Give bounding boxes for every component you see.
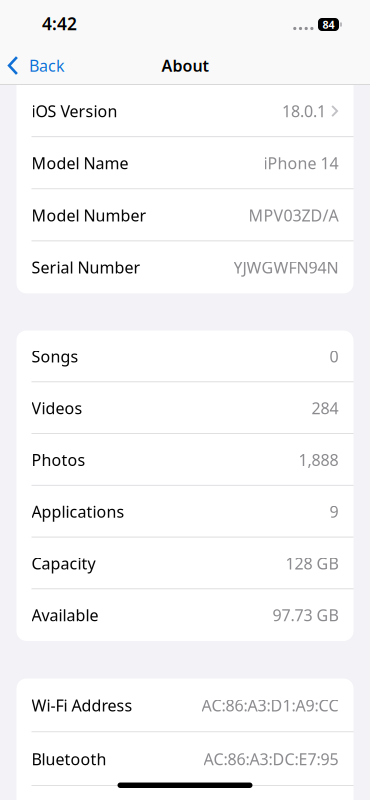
staticText: Videos: [31, 397, 82, 419]
staticText: 97.73 GB: [272, 604, 338, 626]
staticText: Serial Number: [31, 257, 140, 278]
staticText: 128 GB: [285, 553, 338, 574]
staticText: AC:86:A3:D1:A9:CC: [201, 695, 338, 716]
staticText: iPhone 14: [263, 152, 338, 174]
staticText: 84: [322, 17, 334, 32]
staticText: Back: [29, 55, 65, 76]
staticText: 9: [329, 501, 338, 522]
staticText: 18.0.1: [282, 100, 326, 122]
staticText: Songs: [31, 346, 78, 367]
button[interactable]: iOS Version: [16, 85, 353, 137]
staticText: Wi-Fi Address: [31, 695, 132, 716]
staticText: 284: [311, 397, 338, 419]
staticText: MPV03ZD/A: [248, 205, 338, 226]
staticText: Model Name: [31, 152, 128, 174]
staticText: iOS Version: [31, 100, 117, 122]
staticText: Available: [31, 604, 98, 626]
staticText: AC:86:A3:DC:E7:95: [203, 748, 338, 770]
staticText: Applications: [31, 501, 124, 522]
staticText: About: [161, 55, 208, 76]
staticText: Photos: [31, 449, 85, 470]
staticText: Bluetooth: [31, 748, 106, 770]
button[interactable]: Back: [0, 55, 65, 76]
staticText: Model Number: [31, 205, 146, 226]
staticText: Capacity: [31, 553, 95, 574]
staticText: 4:42: [42, 12, 77, 35]
staticText: 0: [329, 346, 338, 367]
staticText: 1,888: [298, 449, 338, 470]
staticText: YJWGWFN94N: [233, 257, 338, 278]
